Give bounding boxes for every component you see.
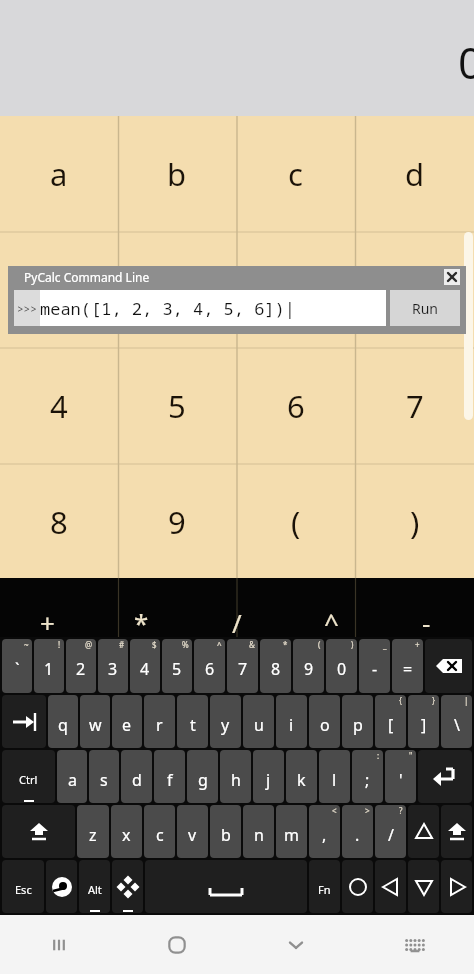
button[interactable]: a <box>0 116 118 232</box>
button[interactable]: circle <box>342 860 373 913</box>
button[interactable]: 3 <box>355 232 474 348</box>
button[interactable]: k <box>286 750 317 803</box>
staticText: d <box>405 153 425 195</box>
button[interactable]: } <box>408 695 439 748</box>
button[interactable]: @ <box>66 639 96 693</box>
staticText: a <box>68 769 77 791</box>
button[interactable]: ! <box>34 639 64 693</box>
button[interactable]: Run <box>390 290 460 326</box>
button[interactable]: 0 <box>0 232 118 348</box>
button[interactable]: l <box>319 750 350 803</box>
staticText: + <box>415 639 420 650</box>
button[interactable]: Recents <box>0 915 118 974</box>
button[interactable]: b <box>118 116 236 232</box>
button[interactable]: + <box>392 639 423 693</box>
button[interactable]: z <box>77 805 109 858</box>
button[interactable]: | <box>441 695 472 748</box>
button[interactable]: ? <box>375 805 406 858</box>
button[interactable]: s <box>89 750 119 803</box>
button[interactable]: Keyboard switcher <box>355 915 474 974</box>
button[interactable]: c <box>144 805 175 858</box>
button[interactable]: c <box>236 116 355 232</box>
staticText: > <box>365 805 370 816</box>
button[interactable]: < <box>309 805 340 858</box>
button[interactable]: 6 <box>236 348 355 464</box>
button[interactable]: 4 <box>0 348 118 464</box>
button[interactable]: f <box>154 750 185 803</box>
button[interactable]: x <box>111 805 142 858</box>
button[interactable]: q <box>48 695 78 748</box>
button[interactable]: g <box>187 750 218 803</box>
button[interactable]: lang <box>46 860 77 913</box>
staticText: Alt <box>88 882 102 897</box>
button[interactable]: up <box>408 805 439 858</box>
button[interactable]: Esc <box>2 860 44 913</box>
button[interactable]: ( <box>293 639 324 693</box>
button[interactable]: d <box>121 750 152 803</box>
button[interactable]: % <box>162 639 192 693</box>
staticText: e <box>122 714 132 736</box>
button[interactable]: >>> <box>14 290 386 326</box>
button[interactable]: 7 <box>355 348 474 464</box>
button[interactable]: m <box>276 805 307 858</box>
button[interactable]: ~ <box>2 639 32 693</box>
staticText: v <box>188 824 197 846</box>
button[interactable]: Alt <box>79 860 110 913</box>
button[interactable]: j <box>253 750 284 803</box>
button[interactable]: 2 <box>236 232 355 348</box>
button[interactable]: a <box>57 750 87 803</box>
button[interactable]: ) <box>355 464 474 580</box>
button[interactable]: down <box>408 860 439 913</box>
button[interactable]: h <box>220 750 251 803</box>
staticText: < <box>332 805 337 816</box>
button[interactable]: 1 <box>118 232 236 348</box>
button[interactable]: b <box>210 805 241 858</box>
staticText: c <box>288 153 303 195</box>
staticText: 0 <box>50 269 68 311</box>
button[interactable]: shift <box>2 805 75 858</box>
button[interactable]: left <box>375 860 406 913</box>
button[interactable]: y <box>210 695 241 748</box>
button[interactable]: Close <box>444 269 460 285</box>
button[interactable]: bksp <box>425 639 472 693</box>
staticText: q <box>58 714 68 736</box>
button[interactable]: n <box>243 805 274 858</box>
button[interactable]: space <box>145 860 307 913</box>
button[interactable]: o <box>309 695 340 748</box>
button[interactable]: ( <box>236 464 355 580</box>
button[interactable]: v <box>177 805 208 858</box>
button[interactable]: right <box>441 860 472 913</box>
button[interactable]: Fn <box>309 860 340 913</box>
button[interactable]: Hide keyboard <box>236 915 355 974</box>
button[interactable]: > <box>342 805 373 858</box>
button[interactable]: enter <box>418 750 472 803</box>
button[interactable]: * <box>260 639 291 693</box>
button[interactable]: t <box>177 695 208 748</box>
button[interactable]: i <box>276 695 307 748</box>
button[interactable]: " <box>385 750 416 803</box>
button[interactable]: d <box>355 116 474 232</box>
button[interactable]: r <box>144 695 175 748</box>
button[interactable]: sym <box>112 860 143 913</box>
button[interactable]: e <box>112 695 142 748</box>
button[interactable]: Ctrl <box>2 750 55 803</box>
button[interactable]: & <box>227 639 258 693</box>
staticText: ! <box>58 639 61 650</box>
button[interactable]: { <box>375 695 406 748</box>
button[interactable]: Home <box>118 915 236 974</box>
button[interactable]: w <box>80 695 110 748</box>
button[interactable]: ^ <box>194 639 225 693</box>
staticText: PyCalc Command Line <box>24 269 150 285</box>
button[interactable]: 5 <box>118 348 236 464</box>
button[interactable]: ) <box>326 639 357 693</box>
button[interactable]: _ <box>359 639 390 693</box>
button[interactable]: shift <box>441 805 472 858</box>
button[interactable]: tab <box>2 695 46 748</box>
button[interactable]: $ <box>130 639 160 693</box>
button[interactable]: 8 <box>0 464 118 580</box>
button[interactable]: # <box>98 639 128 693</box>
button[interactable]: 9 <box>118 464 236 580</box>
button[interactable]: : <box>352 750 383 803</box>
button[interactable]: p <box>342 695 373 748</box>
button[interactable]: u <box>243 695 274 748</box>
